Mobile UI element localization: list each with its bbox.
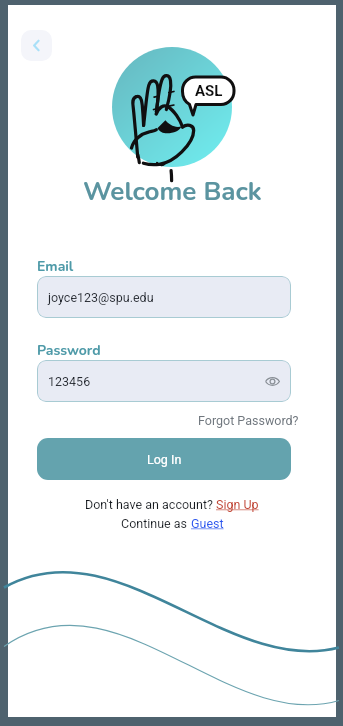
- staticText: ASL: [195, 82, 223, 100]
- staticText: Email: [37, 257, 74, 276]
- staticText: Continue as: [121, 516, 191, 531]
- button[interactable]: Back: [21, 30, 52, 61]
- button[interactable]: Show password: [265, 374, 280, 389]
- staticText: Don't have an account?: [85, 497, 216, 512]
- button[interactable]: Sign Up: [216, 497, 259, 512]
- staticText: Welcome Back: [83, 174, 262, 209]
- staticText: Password: [37, 341, 101, 360]
- button[interactable]: joyce123@spu.edu: [37, 276, 291, 318]
- button[interactable]: Guest: [191, 516, 224, 531]
- button[interactable]: Forgot Password?: [198, 413, 299, 428]
- button[interactable]: 123456: [37, 360, 291, 402]
- staticText: Log In: [147, 452, 182, 467]
- button[interactable]: Log In: [37, 438, 291, 480]
- staticText: 123456: [48, 374, 91, 389]
- staticText: joyce123@spu.edu: [48, 290, 154, 305]
